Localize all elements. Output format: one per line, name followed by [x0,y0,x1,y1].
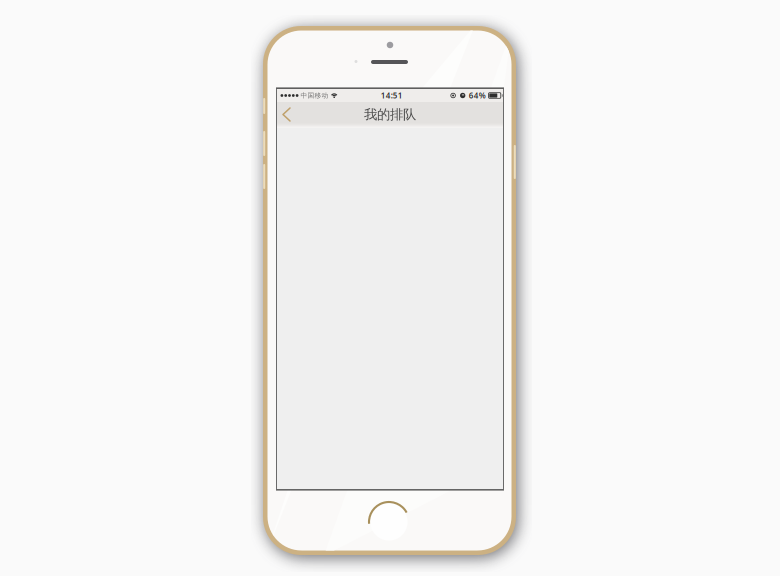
staticText: 我的排队 [364,106,416,123]
staticText: 中国移动 [300,91,328,100]
button[interactable]: Back [277,102,302,127]
staticText: 64% [469,90,486,101]
staticText: 14:51 [381,90,403,101]
